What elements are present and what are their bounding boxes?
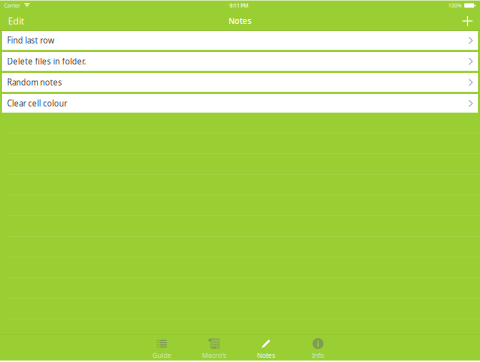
staticText: Find last row xyxy=(7,35,54,46)
staticText: Guide xyxy=(152,351,171,360)
staticText: Notes xyxy=(228,16,251,26)
button[interactable]: New note xyxy=(455,11,480,30)
button[interactable]: Edit xyxy=(0,11,32,30)
button[interactable]: Macro's xyxy=(188,334,240,361)
button[interactable]: Find last row xyxy=(2,31,478,50)
staticText: 100% xyxy=(448,2,461,9)
button[interactable]: Delete files in folder. xyxy=(2,52,478,71)
staticText: Random notes xyxy=(7,77,62,88)
staticText: 9:11 PM xyxy=(230,2,249,9)
staticText: Info xyxy=(312,351,324,360)
staticText: Notes xyxy=(257,351,275,360)
button[interactable]: Notes xyxy=(240,334,292,361)
staticText: Delete files in folder. xyxy=(7,56,86,67)
button[interactable]: Info xyxy=(292,334,344,361)
staticText: Macro's xyxy=(202,351,226,360)
staticText: Clear cell colour xyxy=(7,98,67,109)
button[interactable]: Guide xyxy=(136,334,188,361)
button[interactable]: Random notes xyxy=(2,73,478,92)
button[interactable]: Clear cell colour xyxy=(2,94,478,113)
staticText: Carrier xyxy=(4,2,20,9)
staticText: Edit xyxy=(8,15,24,27)
